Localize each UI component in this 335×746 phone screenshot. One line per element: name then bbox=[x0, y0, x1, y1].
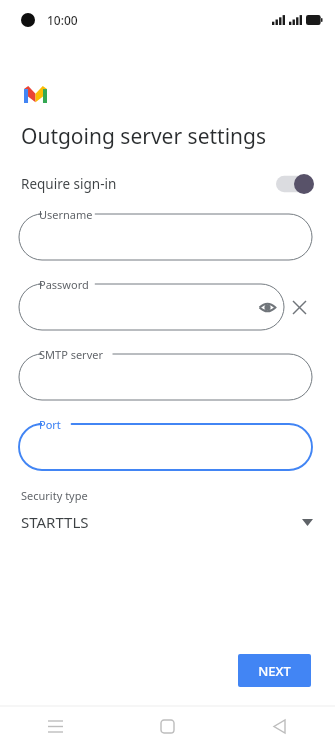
button[interactable]: Require sign-in bbox=[0, 167, 335, 201]
button[interactable]: Username bbox=[19, 206, 312, 260]
staticText: Port bbox=[39, 417, 61, 432]
staticText: Password bbox=[39, 277, 89, 292]
button[interactable]: Password bbox=[19, 276, 284, 330]
staticText: Username bbox=[39, 207, 93, 222]
button[interactable]: NEXT bbox=[238, 654, 311, 687]
button[interactable]: Port bbox=[19, 416, 312, 470]
staticText: SMTP server bbox=[39, 347, 103, 362]
staticText: Require sign-in bbox=[21, 175, 117, 193]
button[interactable]: Show password bbox=[250, 290, 284, 324]
button[interactable]: SMTP server bbox=[19, 346, 312, 400]
staticText: Security type bbox=[21, 488, 88, 503]
staticText: 10:00 bbox=[47, 12, 78, 28]
staticText: NEXT bbox=[258, 662, 291, 680]
button[interactable]: Recent apps bbox=[0, 706, 111, 746]
button[interactable]: Back bbox=[223, 706, 335, 746]
staticText: Outgoing server settings bbox=[21, 122, 267, 151]
button[interactable]: Security type bbox=[0, 488, 335, 532]
button[interactable]: Clear bbox=[284, 292, 314, 322]
staticText: STARTTLS bbox=[21, 512, 89, 532]
button[interactable]: Home bbox=[111, 706, 223, 746]
